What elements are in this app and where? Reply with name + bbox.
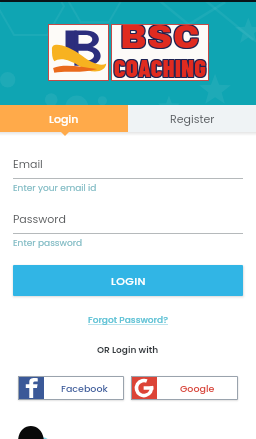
staticText: Login bbox=[49, 111, 79, 126]
button[interactable]: Login bbox=[0, 105, 128, 132]
staticText: BSC bbox=[121, 25, 202, 54]
staticText: BSC bbox=[119, 25, 200, 56]
staticText: LOGIN bbox=[111, 273, 146, 288]
staticText: COACHING bbox=[113, 54, 206, 80]
staticText: BSC bbox=[120, 25, 201, 56]
staticText: Enter your email id bbox=[13, 182, 97, 195]
other: Facebook bbox=[25, 378, 38, 398]
button[interactable]: Google bbox=[131, 376, 238, 400]
staticText: Password bbox=[13, 211, 66, 226]
staticText: COACHING bbox=[114, 54, 207, 80]
staticText: BSC bbox=[120, 25, 201, 54]
staticText: BSC bbox=[121, 25, 202, 55]
staticText: Enter password bbox=[13, 237, 83, 250]
staticText: COACHING bbox=[114, 52, 207, 80]
staticText: COACHING bbox=[113, 53, 206, 80]
staticText: COACHING bbox=[115, 52, 208, 80]
staticText: COACHING bbox=[115, 54, 208, 80]
other: Google bbox=[135, 379, 153, 397]
staticText: BSC bbox=[119, 25, 200, 54]
staticText: OR Login with bbox=[97, 344, 159, 357]
staticText: COACHING bbox=[113, 52, 206, 80]
staticText: Register bbox=[170, 111, 215, 126]
button[interactable]: Facebook bbox=[18, 376, 124, 400]
button[interactable]: Forgot Password? bbox=[88, 314, 169, 327]
button[interactable]: Register bbox=[128, 105, 256, 132]
staticText: BSC bbox=[121, 25, 202, 56]
staticText: BSC bbox=[119, 25, 200, 55]
staticText: Google bbox=[180, 382, 215, 395]
staticText: COACHING bbox=[115, 53, 208, 80]
staticText: COACHING bbox=[114, 53, 207, 80]
staticText: BSC bbox=[120, 25, 201, 55]
staticText: Email bbox=[13, 156, 43, 171]
button[interactable]: LOGIN bbox=[13, 265, 243, 296]
staticText: Facebook bbox=[61, 382, 108, 395]
